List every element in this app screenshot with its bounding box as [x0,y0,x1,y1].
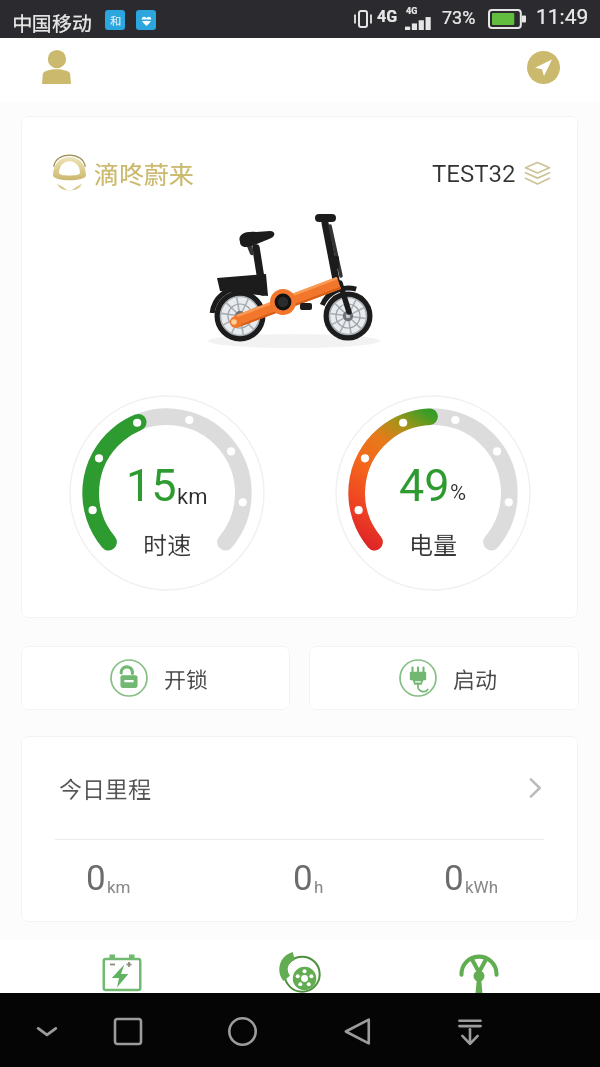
staticText: 电量 [409,526,457,561]
button[interactable]: Hide navigation bar [440,1001,500,1061]
staticText: 滴咚蔚来 [94,155,195,191]
button[interactable]: Back [327,1001,387,1061]
staticText: % [450,480,467,506]
button[interactable]: Signal [447,943,510,999]
staticText: h [314,877,324,897]
button[interactable]: Navigate [527,51,560,84]
button[interactable]: 启动 [309,646,579,710]
staticText: 0 [293,858,313,899]
staticText: 4G [406,6,418,17]
staticText: 4G [377,7,398,26]
staticText: 49 [399,459,450,512]
staticText: 11:49 [536,5,589,30]
staticText: 0 [86,858,106,899]
staticText: 0 [444,858,464,899]
staticText: km [107,877,131,897]
button[interactable]: 今日里程 [21,736,578,839]
staticText: 73% [442,7,476,28]
staticText: TEST32 [432,160,516,188]
staticText: 今日里程 [59,771,151,804]
button[interactable]: Hide keyboard [17,1001,77,1061]
staticText: km [177,484,208,510]
button[interactable]: Recent apps [98,1001,158,1061]
staticText: 开锁 [164,662,209,694]
button[interactable]: Home [212,1001,272,1061]
button[interactable]: Battery [90,943,153,999]
staticText: 和 [110,12,121,28]
button[interactable]: 开锁 [21,646,290,710]
staticText: kWh [465,877,499,897]
staticText: 时速 [143,526,191,561]
staticText: 15 [126,459,177,512]
button[interactable]: Profile [42,50,71,84]
staticText: 中国移动 [12,8,92,37]
staticText: 启动 [453,662,498,694]
button[interactable]: Brakes [268,943,331,999]
